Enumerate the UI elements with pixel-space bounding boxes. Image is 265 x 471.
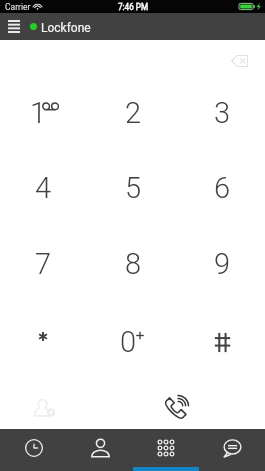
button[interactable]: Star bbox=[7, 306, 79, 378]
staticText: 5 bbox=[125, 171, 142, 205]
button[interactable]: 1 bbox=[7, 77, 79, 149]
button[interactable]: 8 bbox=[97, 228, 169, 300]
staticText: Carrier bbox=[5, 2, 31, 12]
button[interactable]: 4 bbox=[7, 152, 79, 224]
button[interactable]: Menu bbox=[0, 13, 28, 40]
staticText: Lockfone bbox=[41, 21, 91, 35]
button[interactable]: Contacts bbox=[67, 429, 133, 471]
button[interactable]: Pound bbox=[186, 306, 258, 378]
button[interactable]: Add contact bbox=[23, 387, 63, 427]
staticText: 1 bbox=[30, 96, 47, 130]
staticText: 8 bbox=[125, 247, 142, 281]
button[interactable]: 6 bbox=[186, 152, 258, 224]
button[interactable]: 5 bbox=[97, 152, 169, 224]
button[interactable]: Call bbox=[156, 387, 196, 427]
button[interactable]: 7 bbox=[7, 228, 79, 300]
button[interactable]: 2 bbox=[97, 77, 169, 149]
staticText: 6 bbox=[214, 171, 231, 205]
staticText: 0 bbox=[120, 325, 137, 359]
staticText: 7:46 PM bbox=[118, 2, 149, 12]
button[interactable]: Messages bbox=[199, 429, 265, 471]
staticText: 3 bbox=[214, 96, 231, 130]
button[interactable]: 0 bbox=[97, 306, 169, 378]
staticText: 2 bbox=[125, 96, 142, 130]
staticText: 7 bbox=[35, 247, 52, 281]
staticText: 4 bbox=[35, 171, 52, 205]
button[interactable]: Keypad bbox=[133, 429, 199, 471]
button[interactable]: Recents bbox=[0, 429, 67, 471]
staticText: 9 bbox=[214, 247, 231, 281]
button[interactable]: 9 bbox=[186, 228, 258, 300]
button[interactable]: Backspace bbox=[226, 48, 252, 74]
button[interactable]: 3 bbox=[186, 77, 258, 149]
